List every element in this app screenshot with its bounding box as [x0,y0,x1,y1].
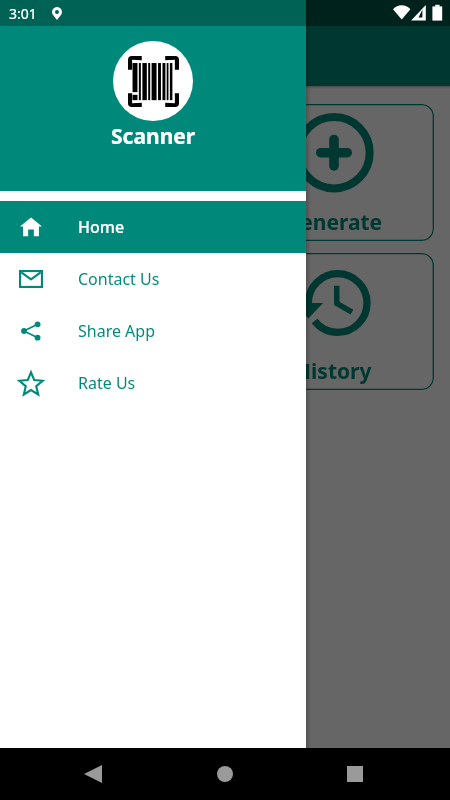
button[interactable]: Home [201,750,249,798]
staticText: Scanner [72,43,150,70]
button[interactable]: Rate Us [0,357,306,409]
button[interactable]: Recent apps [331,750,379,798]
button[interactable]: Generate [233,104,434,241]
button[interactable]: Saved [16,253,217,390]
button[interactable]: Back [69,750,117,798]
staticText: Saved [86,357,148,386]
staticText: Contact Us [78,268,160,290]
button[interactable]: Contact Us [0,253,306,305]
staticText: Rate Us [78,372,136,394]
button[interactable]: History [233,253,434,390]
staticText: Share App [78,320,156,342]
staticText: Scanner [111,122,196,151]
button[interactable]: Share App [0,305,306,357]
staticText: Home [78,216,125,238]
button[interactable]: Home [0,201,306,253]
staticText: History [295,357,372,386]
staticText: 3:01 [9,4,37,23]
button[interactable]: Scan [16,104,217,241]
staticText: Generate [285,208,383,237]
staticText: Scan [92,208,141,237]
